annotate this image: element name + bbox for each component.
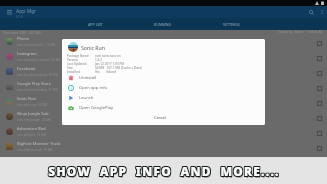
staticText: Last Updated: [67, 62, 87, 66]
button[interactable]: SETTINGS: [197, 18, 265, 30]
staticText: 54 MB 107.1 MB (Cache + Data): [95, 66, 142, 70]
button[interactable]: Search: [305, 6, 317, 18]
staticText: Launch: [79, 95, 94, 101]
staticText: Ninja Jungle Sub: [17, 111, 49, 117]
button[interactable]: Select Facebook: [312, 64, 327, 79]
button[interactable]: RUNNING: [129, 18, 197, 30]
button[interactable]: Phone: [0, 34, 327, 49]
staticText: com.bigfoot.truck 55 MB: [17, 148, 53, 152]
button[interactable]: Facebook: [0, 64, 327, 79]
staticText: SHOW APP INFO AND MORE....: [49, 162, 281, 178]
button[interactable]: Google Play Store: [0, 79, 327, 94]
staticText: Open app info: [79, 85, 108, 91]
staticText: APP LIST: [88, 22, 103, 27]
staticText: Facebook: [17, 66, 36, 72]
staticText: Jan 12 2017 1:03 PM: [95, 62, 125, 66]
staticText: Installed: [67, 70, 80, 74]
staticText: 1.4.2: [95, 58, 102, 62]
staticText: Phone: [17, 36, 30, 42]
staticText: RUNNING: [154, 22, 172, 27]
staticText: App Mgr: [16, 8, 37, 15]
button[interactable]: Select Ninja Jungle Sub: [312, 109, 327, 124]
staticText: SHOW APP INFO AND MORE....: [49, 165, 281, 181]
staticText: Instagram: [17, 51, 37, 57]
staticText: com.sonic.run 64 MB: [17, 103, 48, 107]
staticText: 0 / 8: [16, 15, 23, 19]
staticText: com.facebook.katana 92 MB: [17, 73, 58, 77]
staticText: Packages (0/8) - 331 MB: [3, 30, 41, 34]
button[interactable]: Instagram: [0, 49, 327, 64]
button[interactable]: Select Google Play Store: [312, 79, 327, 94]
button[interactable]: Select Adventure Bird: [312, 124, 327, 139]
staticText: BigFoot Monster Truck: [17, 141, 61, 147]
staticText: Open GooglePlay: [79, 105, 114, 111]
button[interactable]: APP LIST: [61, 18, 129, 30]
staticText: com.instagram.android 48 MB: [17, 58, 61, 62]
button[interactable]: More options: [317, 7, 327, 17]
button[interactable]: Select Sonic Run: [312, 94, 327, 109]
staticText: Size: [67, 66, 73, 70]
button[interactable]: Cancel: [148, 113, 173, 122]
staticText: Sonic Run: [81, 44, 106, 51]
button[interactable]: Open GooglePlay: [62, 103, 265, 113]
staticText: Adventure Bird: [17, 126, 46, 132]
staticText: Package Name: [67, 54, 89, 58]
button[interactable]: Ninja Jungle Sub: [0, 109, 327, 124]
button[interactable]: Select BigFoot Monster Truck: [312, 139, 327, 154]
staticText: com.android.dialer 1.2 MB: [17, 43, 55, 47]
staticText: SHOW APP INFO AND MORE....: [47, 164, 279, 180]
staticText: Yes Sdcard: [95, 70, 117, 74]
staticText: SHOW APP INFO AND MORE....: [48, 162, 280, 178]
staticText: com.sonicrun.run: [95, 54, 121, 58]
staticText: Google Play Store: [17, 81, 51, 87]
staticText: com.ninja.jungle 22 MB: [17, 118, 51, 122]
staticText: SETTINGS: [223, 22, 240, 27]
staticText: SHOW APP INFO AND MORE....: [48, 163, 280, 179]
staticText: SHOW APP INFO AND MORE....: [48, 164, 280, 180]
button[interactable]: Select Instagram: [312, 49, 327, 64]
staticText: SHOW APP INFO AND MORE....: [49, 164, 281, 180]
staticText: com.android.vending 31 MB: [17, 88, 58, 92]
staticText: SHOW APP INFO AND MORE....: [47, 163, 279, 179]
button[interactable]: Sonic Run: [0, 94, 327, 109]
staticText: Sonic Run: [17, 96, 36, 102]
staticText: SHOW APP INFO AND MORE....: [47, 162, 279, 178]
button[interactable]: Open app info: [62, 83, 265, 93]
staticText: SHOW APP INFO AND MORE....: [49, 163, 281, 179]
staticText: Cancel: [154, 115, 167, 120]
staticText: com.adv.bird 18 MB: [17, 133, 46, 137]
button[interactable]: Open navigation drawer: [4, 6, 14, 18]
button[interactable]: Select Phone: [312, 34, 327, 49]
staticText: Sorted by : Name | Select All: [278, 30, 323, 34]
button[interactable]: Adventure Bird: [0, 124, 327, 139]
button[interactable]: BigFoot Monster Truck: [0, 139, 327, 154]
staticText: Version: [67, 58, 78, 62]
button[interactable]: Launch: [62, 93, 265, 103]
staticText: Uninstall: [79, 75, 97, 81]
button[interactable]: Uninstall: [62, 73, 265, 83]
